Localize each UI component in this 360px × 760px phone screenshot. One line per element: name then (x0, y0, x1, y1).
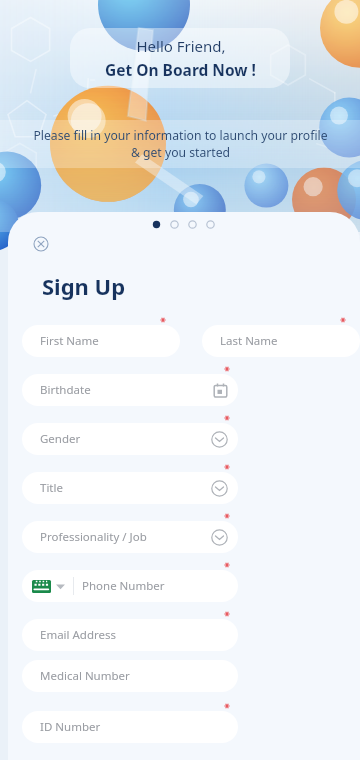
button[interactable]: Last Name (202, 325, 360, 357)
staticText: Get On Board Now ! (105, 59, 256, 80)
staticText: Professionality / Job (40, 529, 207, 545)
button[interactable]: Close (30, 233, 52, 255)
staticText: Medical Number (40, 668, 228, 684)
staticText: Last Name (220, 333, 350, 349)
button[interactable]: ID Number (22, 711, 238, 743)
button[interactable]: First Name (22, 325, 180, 357)
button[interactable]: Title (22, 472, 238, 504)
button[interactable]: Medical Number (22, 660, 238, 692)
button[interactable]: Birthdate (22, 374, 238, 406)
staticText: Gender (40, 431, 207, 447)
staticText: Email Address (40, 627, 228, 643)
staticText: Hello Friend, (136, 36, 226, 56)
button[interactable]: Phone Number (22, 570, 238, 602)
button[interactable]: Professionality / Job (22, 521, 238, 553)
staticText: Title (40, 480, 207, 496)
button[interactable]: Gender (22, 423, 238, 455)
staticText: Phone Number (82, 578, 228, 594)
button[interactable]: Email Address (22, 619, 238, 651)
staticText: Please fill in your information to launc… (33, 127, 328, 161)
staticText: Sign Up (42, 271, 126, 301)
staticText: First Name (40, 333, 170, 349)
staticText: Birthdate (40, 382, 209, 398)
staticText: ID Number (40, 719, 228, 735)
